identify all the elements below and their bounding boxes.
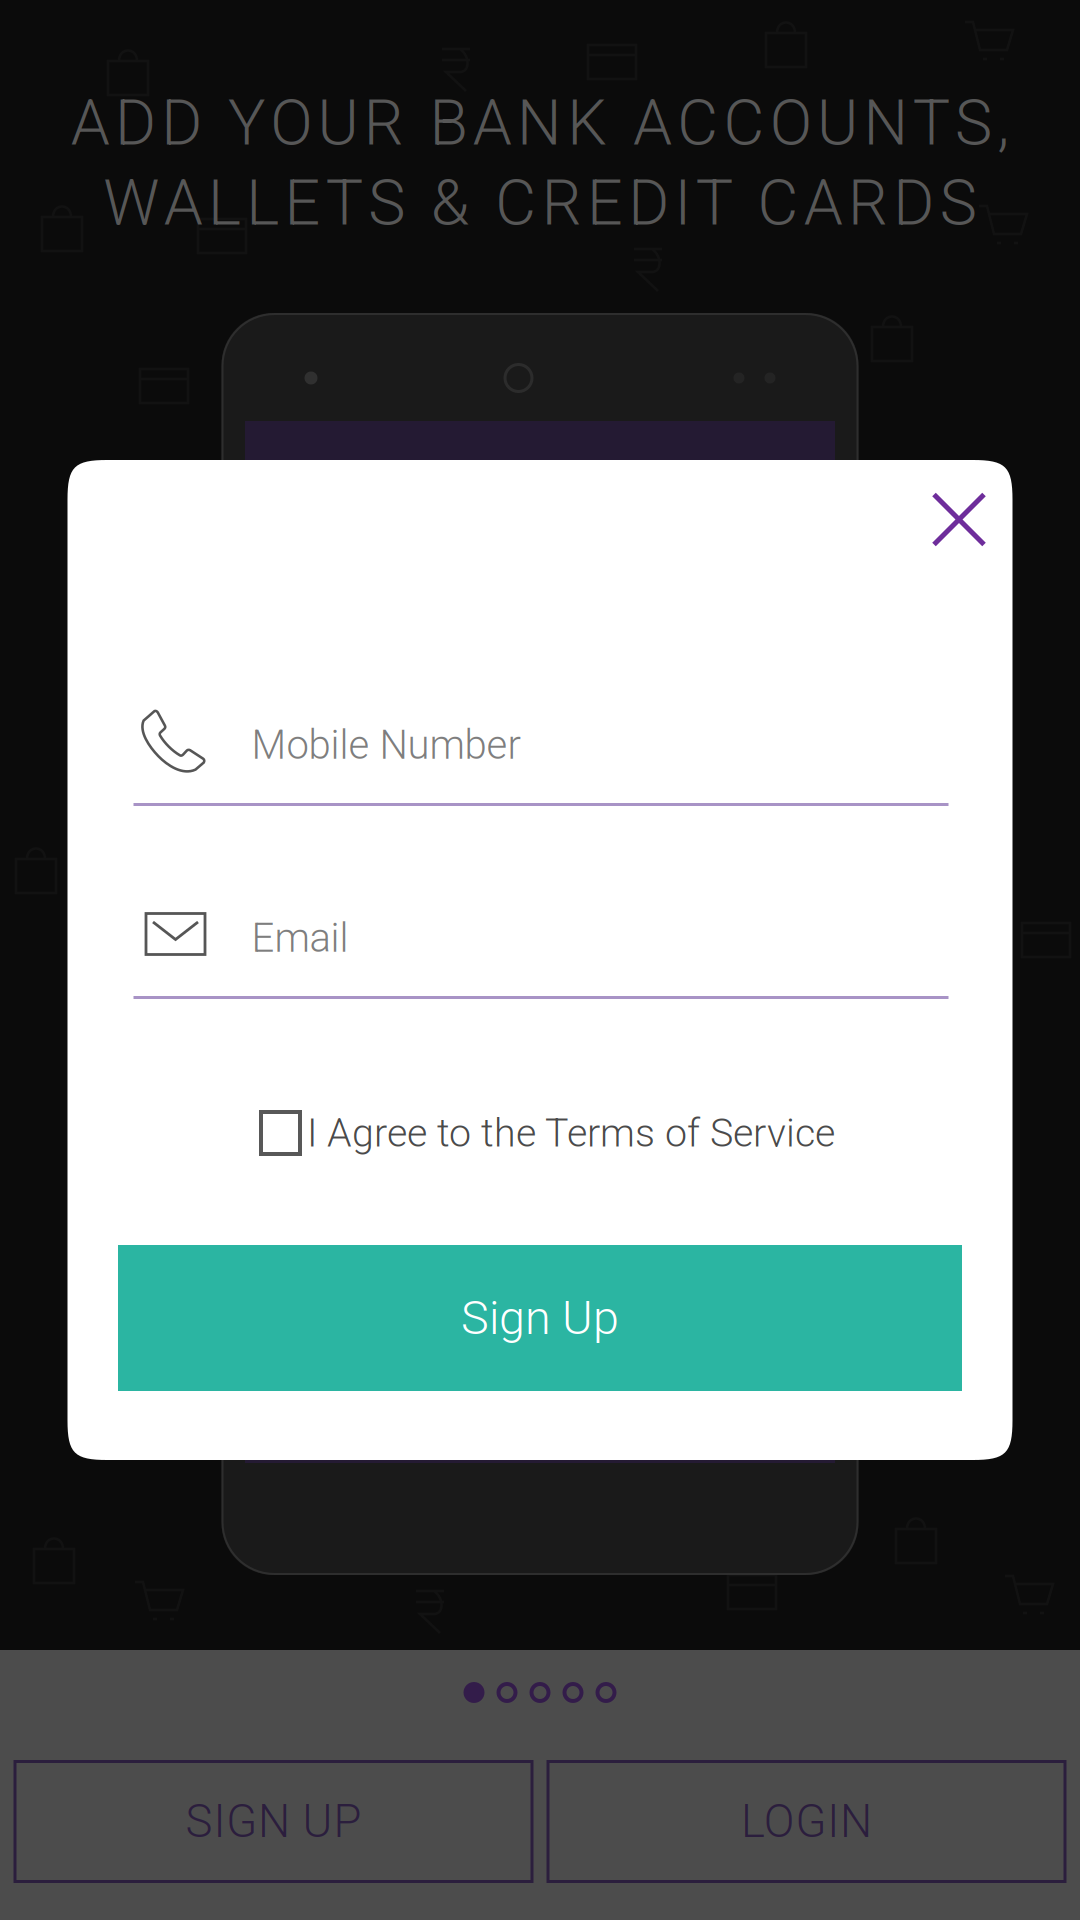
staticText: Sign Up (461, 1291, 619, 1345)
staticText: SIGN UP (186, 1795, 361, 1848)
staticText: LOGIN (741, 1795, 872, 1848)
staticText: ADD YOUR BANK ACCOUNTS, (71, 86, 1009, 160)
staticText: WALLETS & CREDIT CARDS (103, 166, 977, 240)
button[interactable]: Close (876, 460, 986, 579)
button[interactable]: Sign Up (118, 1245, 962, 1391)
button[interactable]: LOGIN (546, 1760, 1066, 1883)
button[interactable]: SIGN UP (13, 1760, 533, 1883)
staticText: Email (251, 915, 348, 961)
button[interactable]: I Agree to the Terms of Service (245, 1103, 835, 1163)
staticText: I Agree to the Terms of Service (307, 1110, 835, 1156)
staticText: Mobile Number (251, 722, 520, 768)
